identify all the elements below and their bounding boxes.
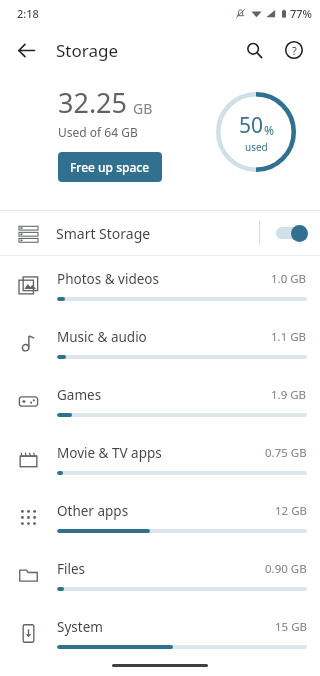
staticText: Movie & TV apps: [57, 444, 265, 462]
button[interactable]: Movie & TV apps: [0, 430, 320, 488]
button[interactable]: Music & audio: [0, 314, 320, 372]
staticText: %: [264, 122, 274, 138]
staticText: ?: [292, 43, 297, 58]
staticText: 50: [239, 111, 264, 140]
staticText: GB: [133, 99, 153, 118]
staticText: 77%: [290, 6, 312, 21]
staticText: Photos & videos: [57, 270, 271, 288]
staticText: 1.9 GB: [271, 387, 307, 403]
button[interactable]: Games: [0, 372, 320, 430]
staticText: used: [245, 140, 268, 154]
button[interactable]: Smart Storage toggle: [274, 223, 310, 243]
button[interactable]: Photos & videos: [0, 256, 320, 314]
staticText: Used of 64 GB: [58, 124, 138, 140]
button[interactable]: Help: [274, 30, 314, 70]
staticText: 0.90 GB: [265, 561, 307, 577]
staticText: 32.25: [58, 84, 128, 121]
button[interactable]: System: [0, 604, 320, 662]
button[interactable]: Back: [6, 30, 46, 70]
button[interactable]: Search: [234, 30, 274, 70]
staticText: 2:18: [17, 6, 39, 21]
staticText: 1.0 GB: [271, 271, 307, 287]
staticText: Music & audio: [57, 328, 271, 346]
staticText: Storage: [56, 39, 119, 62]
staticText: 12 GB: [275, 503, 307, 519]
button[interactable]: Free up space: [58, 152, 162, 182]
staticText: Games: [57, 386, 271, 404]
button[interactable]: Smart Storage: [0, 211, 320, 255]
staticText: Smart Storage: [56, 224, 259, 243]
staticText: Files: [57, 560, 265, 578]
staticText: 0.75 GB: [265, 445, 307, 461]
staticText: 15 GB: [275, 619, 307, 635]
button[interactable]: Files: [0, 546, 320, 604]
staticText: Other apps: [57, 502, 275, 520]
button[interactable]: Other apps: [0, 488, 320, 546]
staticText: Free up space: [70, 159, 150, 175]
staticText: 1.1 GB: [271, 329, 307, 345]
staticText: System: [57, 618, 275, 636]
